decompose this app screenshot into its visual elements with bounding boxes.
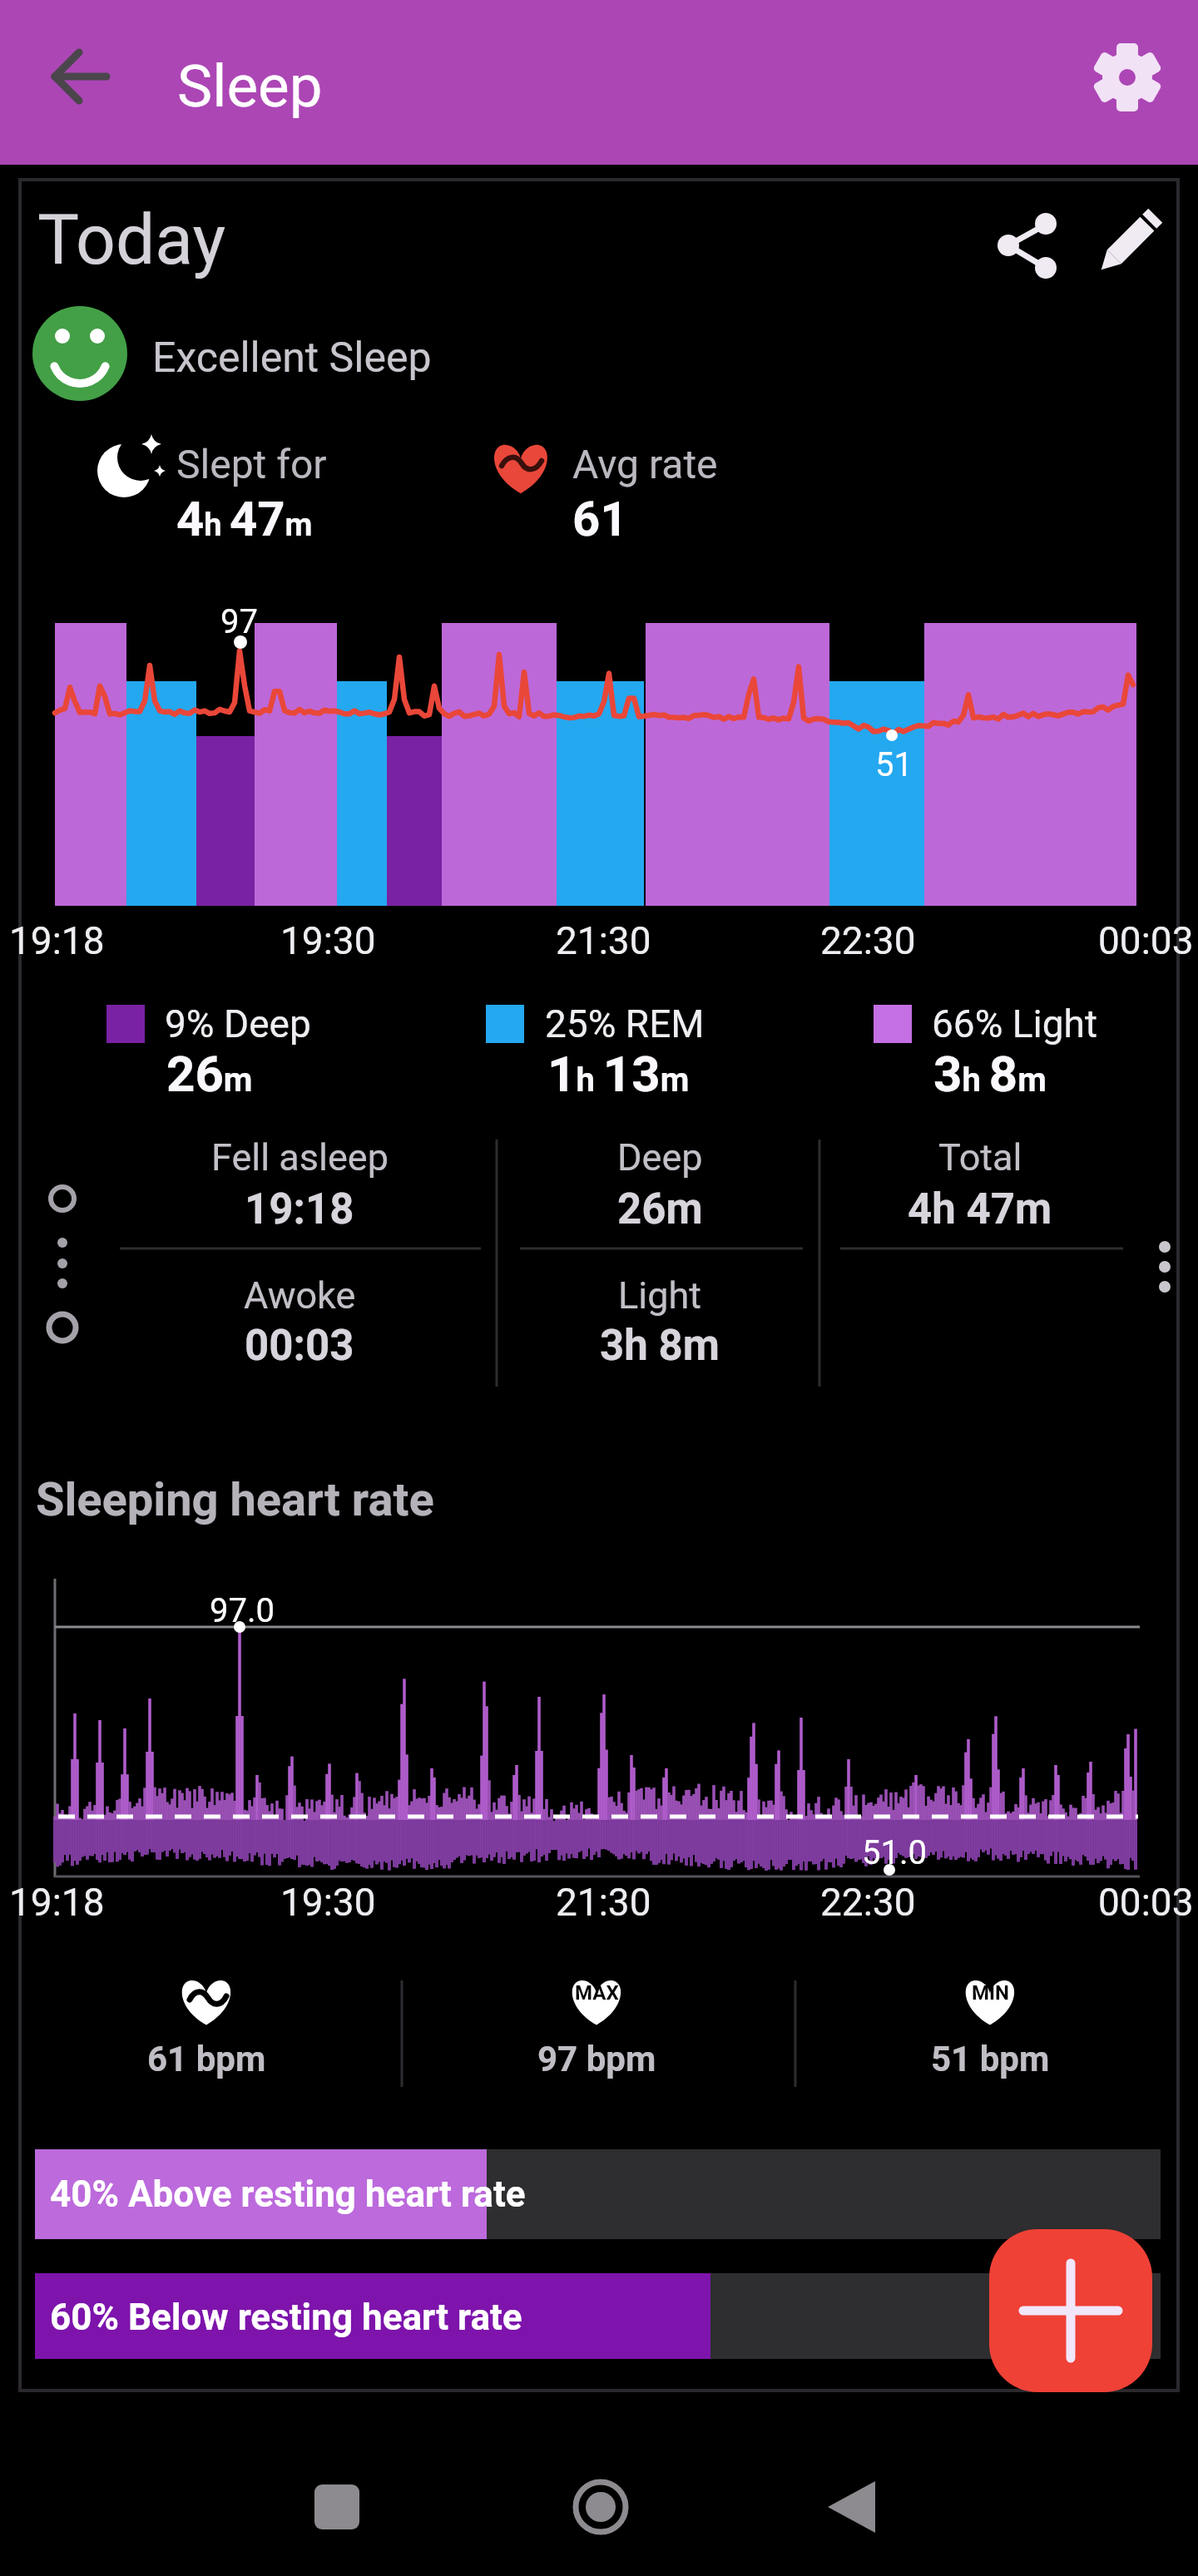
- staticText: 00:03: [245, 1321, 354, 1371]
- staticText: Sleep: [177, 52, 323, 121]
- staticText: Sleeping heart rate: [36, 1472, 434, 1527]
- staticText: Slept for: [176, 441, 327, 487]
- button[interactable]: [1131, 1214, 1198, 1323]
- staticText: 40% Above resting heart rate: [50, 2173, 526, 2216]
- staticText: 26m: [617, 1184, 703, 1234]
- staticText: 97 bpm: [537, 2039, 656, 2079]
- staticText: 97.0: [210, 1591, 275, 1630]
- staticText: 19:30: [280, 1880, 376, 1925]
- button[interactable]: [989, 2229, 1152, 2392]
- staticText: 3h 8m: [933, 1045, 1047, 1103]
- staticText: 19:18: [245, 1184, 354, 1234]
- staticText: 3h 8m: [600, 1321, 720, 1371]
- staticText: 1h 13m: [547, 1045, 690, 1103]
- staticText: 51: [875, 745, 913, 784]
- button[interactable]: [982, 200, 1073, 291]
- button[interactable]: [287, 2457, 387, 2557]
- staticText: Avg rate: [572, 441, 718, 487]
- staticText: 19:30: [280, 918, 376, 963]
- staticText: 26m: [166, 1045, 253, 1103]
- staticText: 4h 47m: [176, 491, 313, 547]
- staticText: 97: [220, 602, 258, 641]
- staticText: 60% Below resting heart rate: [50, 2296, 522, 2339]
- staticText: 51 bpm: [931, 2039, 1050, 2079]
- staticText: 66% Light: [932, 1001, 1097, 1046]
- button[interactable]: [802, 2457, 902, 2557]
- staticText: MAX: [575, 1981, 619, 2005]
- staticText: 25% REM: [545, 1001, 705, 1046]
- staticText: 19:18: [9, 1880, 105, 1925]
- staticText: 19:18: [9, 918, 105, 963]
- button[interactable]: [1082, 200, 1173, 291]
- staticText: Fell asleep: [211, 1135, 389, 1179]
- button[interactable]: [33, 30, 133, 130]
- staticText: Today: [37, 199, 226, 280]
- staticText: Deep: [617, 1135, 703, 1179]
- staticText: 21:30: [556, 1880, 651, 1925]
- staticText: Awoke: [244, 1273, 356, 1318]
- staticText: Light: [618, 1273, 701, 1318]
- staticText: 00:03: [1098, 1880, 1194, 1925]
- staticText: 61: [572, 491, 628, 547]
- button[interactable]: [551, 2457, 651, 2557]
- staticText: Total: [938, 1135, 1022, 1179]
- staticText: MIN: [972, 1981, 1009, 2005]
- staticText: 00:03: [1098, 918, 1194, 963]
- staticText: 21:30: [556, 918, 651, 963]
- staticText: 51.0: [862, 1833, 927, 1872]
- staticText: 9% Deep: [165, 1001, 311, 1046]
- staticText: 4h 47m: [908, 1184, 1052, 1234]
- staticText: 22:30: [820, 918, 916, 963]
- staticText: 22:30: [820, 1880, 916, 1925]
- button[interactable]: [1075, 25, 1181, 131]
- staticText: 61 bpm: [147, 2039, 266, 2079]
- staticText: Excellent Sleep: [152, 334, 432, 383]
